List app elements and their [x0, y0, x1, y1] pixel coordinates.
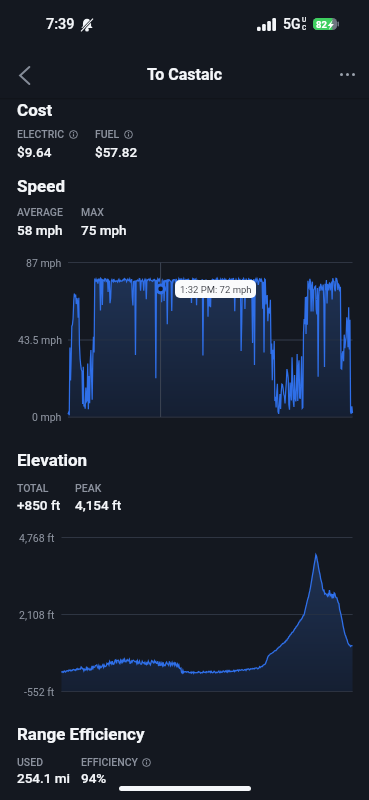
staticText: Speed	[17, 176, 65, 196]
staticText: EFFICIENCY	[81, 756, 138, 768]
staticText: 82	[316, 19, 327, 30]
staticText: U	[302, 16, 307, 24]
staticText: 75 mph	[81, 222, 127, 238]
staticText: 4,154 ft	[75, 497, 122, 513]
staticText: MAX	[81, 206, 104, 218]
staticText: 5G	[283, 16, 301, 32]
staticText: C	[302, 24, 307, 32]
staticText: ELECTRIC	[17, 128, 65, 140]
staticText: 4,768 ft	[19, 532, 55, 544]
staticText: 254.1 mi	[17, 770, 71, 786]
staticText: 94%	[81, 770, 107, 786]
button[interactable]: Back	[4, 55, 44, 95]
staticText: FUEL	[95, 128, 120, 140]
staticText: To Castaic	[147, 65, 223, 84]
staticText: 2,108 ft	[19, 609, 55, 621]
staticText: 0 mph	[32, 411, 62, 423]
staticText: 1:32 PM: 72 mph	[180, 284, 252, 295]
staticText: -552 ft	[24, 686, 55, 698]
button[interactable]: More options	[327, 54, 367, 94]
staticText: $57.82	[95, 144, 138, 160]
staticText: 87 mph	[26, 257, 62, 269]
staticText: 43.5 mph	[18, 334, 62, 346]
staticText: TOTAL	[17, 482, 49, 494]
staticText: +850 ft	[17, 497, 61, 513]
staticText: AVERAGE	[17, 206, 63, 218]
staticText: PEAK	[75, 482, 102, 494]
staticText: Range Efficiency	[17, 724, 145, 744]
staticText: 58 mph	[17, 222, 63, 238]
staticText: Elevation	[17, 450, 88, 470]
staticText: USED	[17, 756, 43, 768]
staticText: $9.64	[17, 144, 52, 160]
staticText: Cost	[17, 100, 53, 120]
staticText: 7:39	[46, 16, 75, 33]
